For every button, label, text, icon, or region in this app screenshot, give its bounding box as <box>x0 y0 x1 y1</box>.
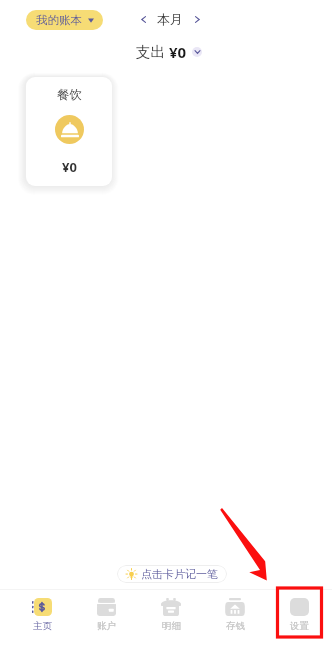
staticText: 明细 <box>162 620 181 632</box>
staticText: ¥0 <box>169 42 187 62</box>
button[interactable]: 存钱 <box>205 593 265 632</box>
staticText: 主页 <box>33 620 52 632</box>
button[interactable]: 点击卡片记一笔 <box>117 565 227 583</box>
other: Previous month <box>140 13 147 26</box>
staticText: 存钱 <box>226 620 245 632</box>
button[interactable]: 账户 <box>76 593 136 632</box>
staticText: ¥0 <box>62 158 77 176</box>
staticText: 本月 <box>157 11 183 27</box>
button[interactable]: 明细 <box>141 593 201 632</box>
staticText: 设置 <box>290 620 309 632</box>
button[interactable]: 餐饮 <box>26 77 112 186</box>
staticText: 点击卡片记一笔 <box>141 567 218 581</box>
staticText: 我的账本 <box>36 13 82 27</box>
button[interactable]: Previous month <box>140 11 201 27</box>
staticText: 支出 <box>136 43 165 61</box>
button[interactable]: 设置 <box>269 593 329 632</box>
button[interactable]: 支出 <box>136 42 202 62</box>
staticText: 账户 <box>97 620 116 632</box>
button[interactable]: 我的账本 <box>26 10 103 30</box>
staticText: 餐饮 <box>57 87 82 103</box>
other: Next month <box>194 13 201 26</box>
button[interactable]: 主页 <box>12 593 72 632</box>
